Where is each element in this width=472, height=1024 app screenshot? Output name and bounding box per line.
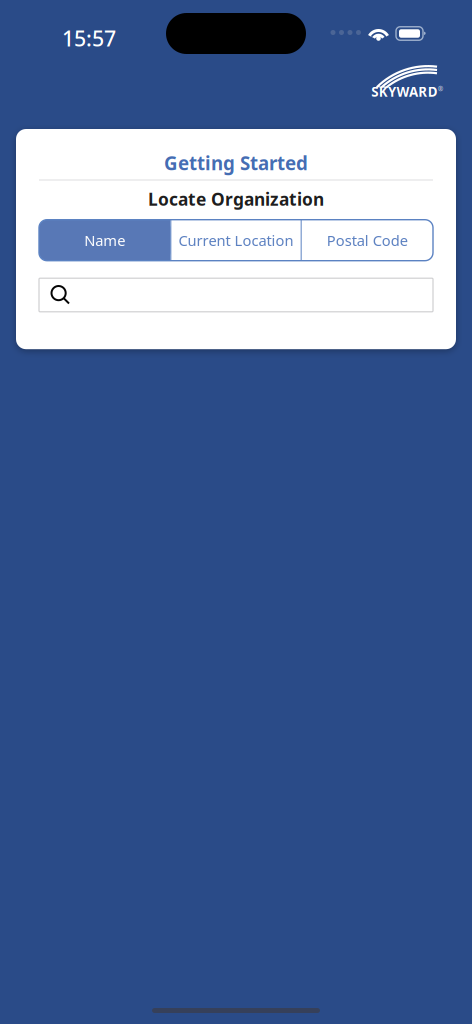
staticText: Name [84,230,125,250]
staticText: 15:57 [62,24,116,52]
button[interactable]: Current Location [170,220,302,261]
staticText: Postal Code [327,230,408,250]
staticText: ® [438,85,444,93]
staticText: Getting Started [164,150,308,175]
staticText: Locate Organization [148,188,324,211]
staticText: SKYWARD [371,83,438,100]
button[interactable]: Postal Code [302,220,433,261]
button[interactable]: Name [39,220,170,261]
staticText: Current Location [178,230,293,250]
